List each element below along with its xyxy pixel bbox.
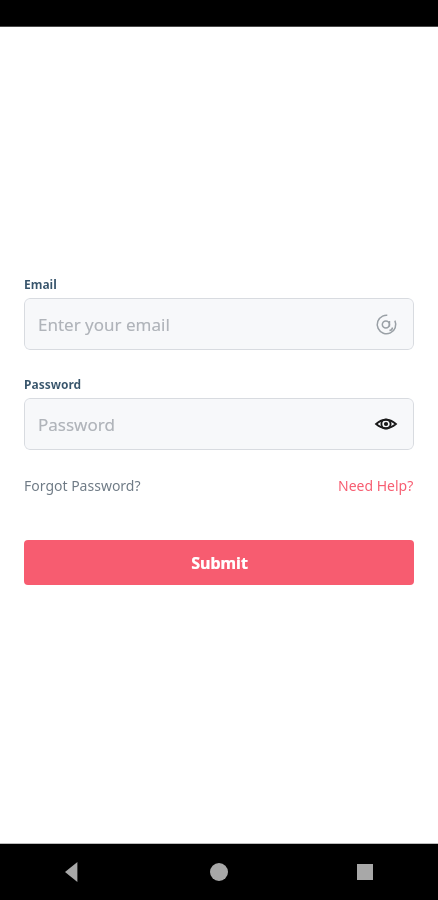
button[interactable]: Password <box>24 398 414 450</box>
button[interactable]: Recent apps <box>292 844 438 900</box>
button[interactable]: Email <box>372 310 400 338</box>
button[interactable]: Back <box>0 844 146 900</box>
staticText: Enter your email <box>38 313 372 336</box>
button[interactable]: Show password <box>372 410 400 438</box>
staticText: Forgot Password? <box>24 476 141 495</box>
staticText: Password <box>38 413 372 436</box>
button[interactable]: Submit <box>24 540 414 585</box>
staticText: Need Help? <box>338 476 414 495</box>
staticText: Email <box>24 276 57 292</box>
button[interactable]: Need Help? <box>338 472 414 499</box>
button[interactable]: Forgot Password? <box>24 472 141 499</box>
staticText: Submit <box>191 552 248 574</box>
staticText: Password <box>24 376 82 392</box>
button[interactable]: Enter your email <box>24 298 414 350</box>
button[interactable]: Home <box>146 844 292 900</box>
